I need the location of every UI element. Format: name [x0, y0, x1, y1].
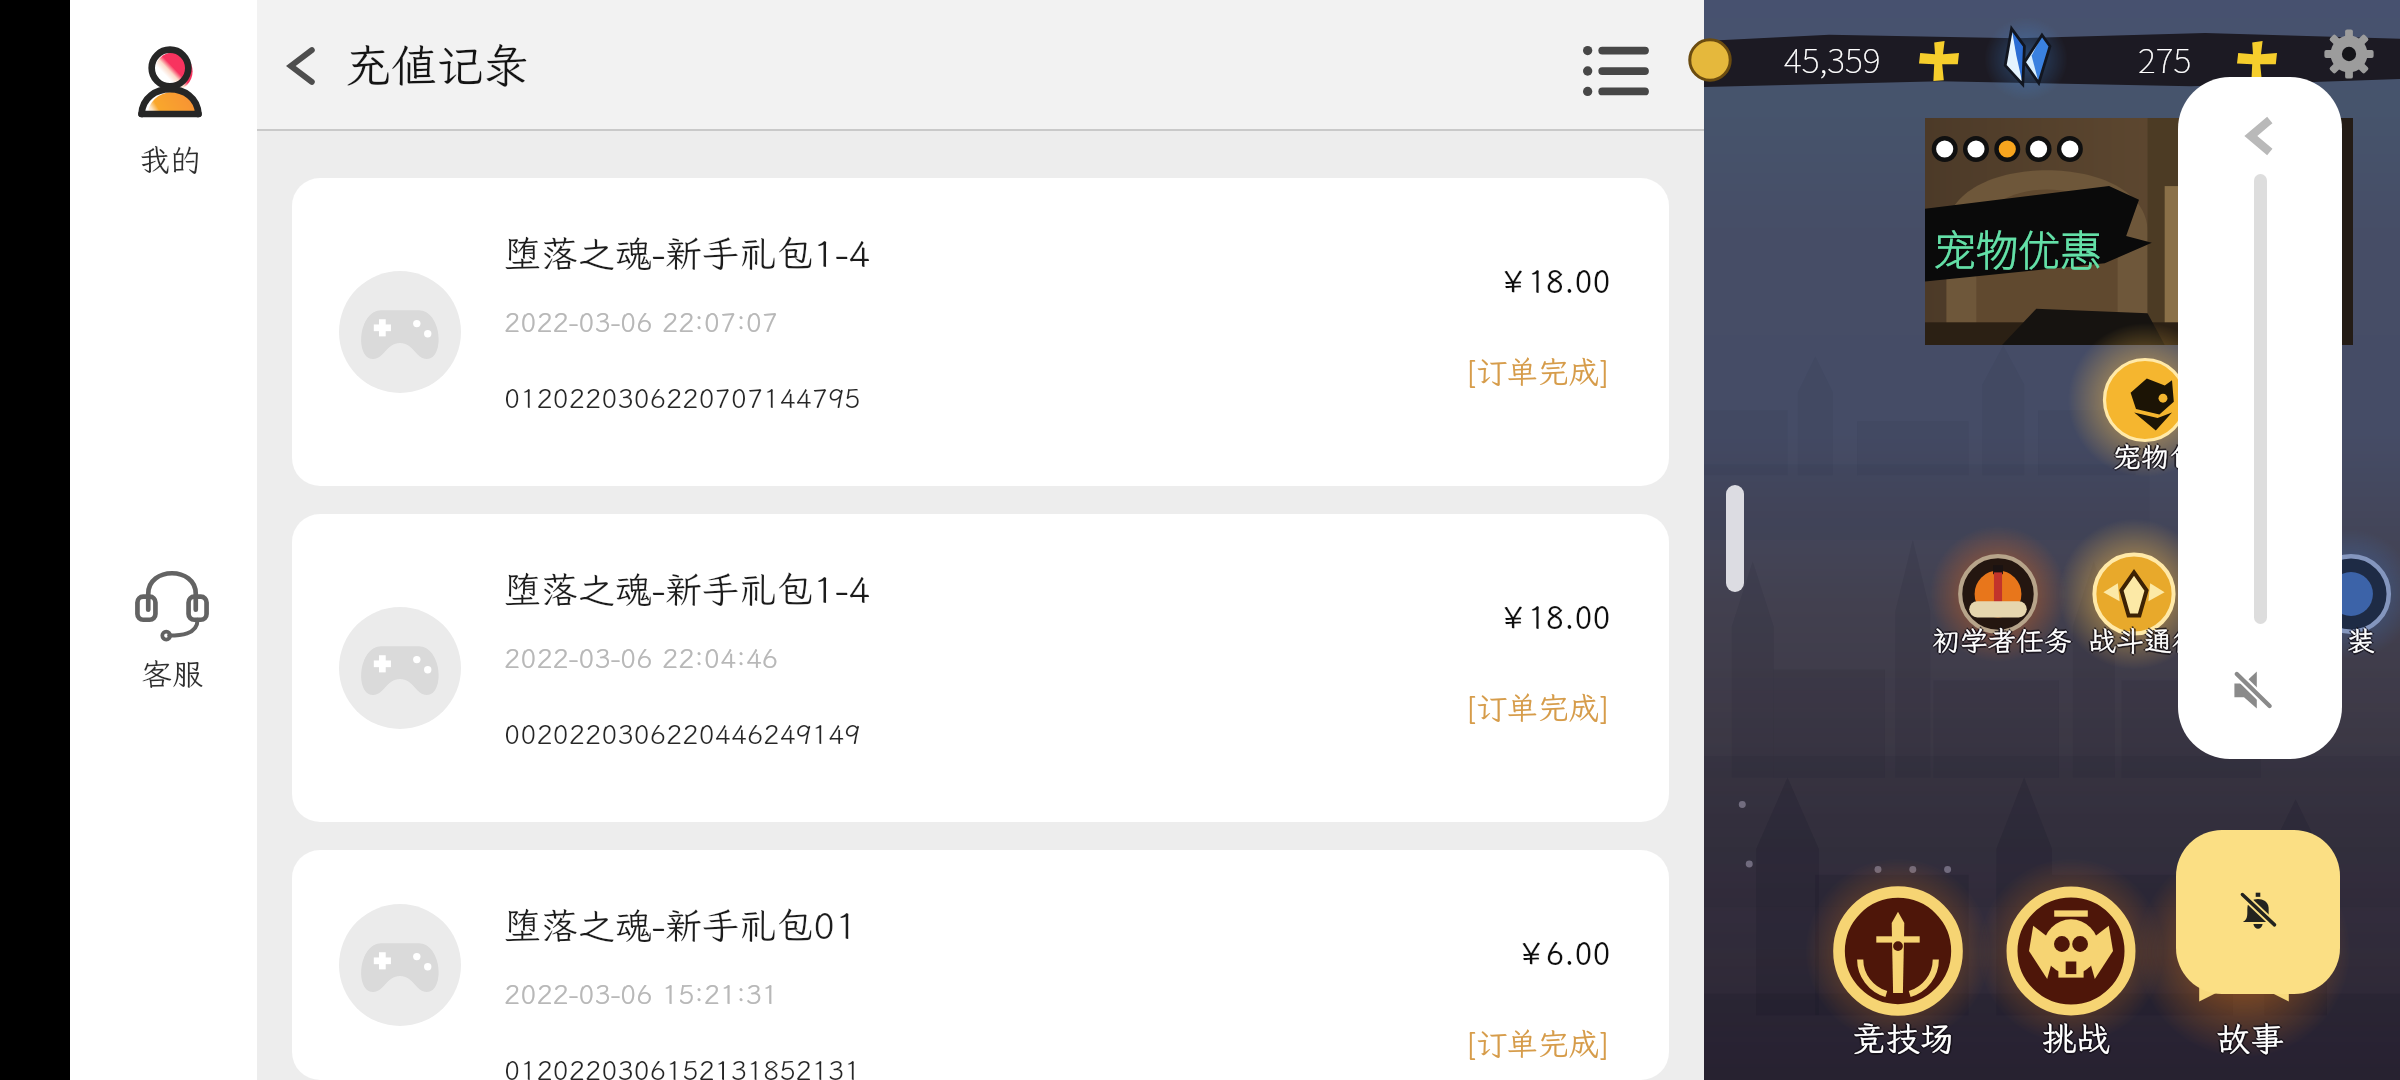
- staticText: 宠物优惠: [1934, 217, 2103, 278]
- staticText: 堕落之魂-新手礼包1-4: [504, 565, 871, 614]
- staticText: 故事: [2218, 1016, 2286, 1061]
- staticText: 0120220306220707144795: [504, 380, 861, 416]
- staticText: 我的: [139, 139, 201, 180]
- staticText: 初学者任务: [1932, 620, 2073, 657]
- staticText: 初学者任务: [1930, 622, 2071, 659]
- staticText: 2022-03-06 22:04:46: [504, 640, 779, 676]
- staticText: 宠物包: [2113, 440, 2198, 477]
- staticText: 0120220306152131852131: [504, 1052, 861, 1080]
- staticText: 战斗通行: [2088, 620, 2201, 657]
- staticText: 战斗通行: [2086, 622, 2199, 659]
- staticText: 竞技场: [1854, 1016, 1956, 1061]
- staticText: 战斗通行: [2090, 622, 2203, 659]
- staticText: ￥18.00: [1498, 597, 1611, 637]
- staticText: 初学者任务: [1932, 622, 2073, 659]
- button[interactable]: Story: [2174, 881, 2314, 1021]
- staticText: [订单完成]: [1465, 351, 1611, 392]
- staticText: 装: [2347, 620, 2376, 657]
- button[interactable]: 我的: [105, 33, 235, 192]
- staticText: 竞技场: [1850, 1016, 1952, 1061]
- staticText: [订单完成]: [1465, 1023, 1611, 1064]
- staticText: 故事: [2216, 1016, 2284, 1061]
- staticText: 竞技场: [1852, 1014, 1954, 1059]
- button[interactable]: 堕落之魂-新手礼包01: [292, 850, 1669, 1080]
- staticText: 装: [2347, 624, 2376, 661]
- staticText: 故事: [2216, 1014, 2284, 1059]
- button[interactable]: 堕落之魂-新手礼包1-4: [292, 178, 1669, 486]
- button[interactable]: Arena: [1828, 881, 1968, 1021]
- staticText: 宠物包: [2111, 438, 2196, 475]
- staticText: 2022-03-06 22:07:07: [504, 304, 779, 340]
- button[interactable]: Menu: [1554, 6, 1674, 126]
- staticText: 挑战: [2042, 1016, 2110, 1061]
- button[interactable]: Settings: [2322, 27, 2376, 81]
- staticText: 挑战: [2044, 1016, 2112, 1061]
- staticText: 挑战: [2040, 1016, 2108, 1061]
- staticText: 装: [2347, 622, 2376, 659]
- staticText: 故事: [2216, 1018, 2284, 1063]
- staticText: 2022-03-06 15:21:31: [504, 976, 779, 1012]
- staticText: 挑战: [2042, 1014, 2110, 1059]
- staticText: 竞技场: [1852, 1018, 1954, 1063]
- staticText: 275: [2138, 34, 2192, 83]
- button[interactable]: Back: [257, 22, 345, 110]
- staticText: 堕落之魂-新手礼包01: [504, 901, 858, 950]
- staticText: 充值记录: [345, 35, 529, 96]
- button[interactable]: Pet sale promotion banner: [1925, 118, 2353, 345]
- staticText: ￥6.00: [1516, 933, 1611, 973]
- button[interactable]: Challenge: [2001, 881, 2141, 1021]
- staticText: 0020220306220446249149: [504, 716, 861, 752]
- staticText: 客服: [141, 653, 203, 694]
- staticText: 宠物包: [2113, 436, 2198, 473]
- staticText: 初学者任务: [1932, 624, 2073, 661]
- staticText: 初学者任务: [1934, 622, 2075, 659]
- button[interactable]: Expand volume: [2229, 107, 2287, 165]
- staticText: ￥18.00: [1498, 261, 1611, 301]
- button[interactable]: Unmute: [2219, 657, 2285, 723]
- staticText: 战斗通行: [2088, 622, 2201, 659]
- button[interactable]: Notifications off: [2176, 830, 2340, 994]
- staticText: 宠物包: [2115, 438, 2200, 475]
- staticText: 宠物包: [2113, 438, 2198, 475]
- staticText: 竞技场: [1852, 1016, 1954, 1061]
- staticText: 45,359: [1784, 34, 1881, 83]
- staticText: 堕落之魂-新手礼包1-4: [504, 229, 871, 278]
- button[interactable]: 堕落之魂-新手礼包1-4: [292, 514, 1669, 822]
- staticText: 故事: [2214, 1016, 2282, 1061]
- staticText: [订单完成]: [1465, 687, 1611, 728]
- staticText: 战斗通行: [2088, 624, 2201, 661]
- staticText: 挑战: [2042, 1018, 2110, 1063]
- staticText: 装: [2345, 622, 2374, 659]
- button[interactable]: 客服: [110, 553, 234, 706]
- staticText: 装: [2349, 622, 2378, 659]
